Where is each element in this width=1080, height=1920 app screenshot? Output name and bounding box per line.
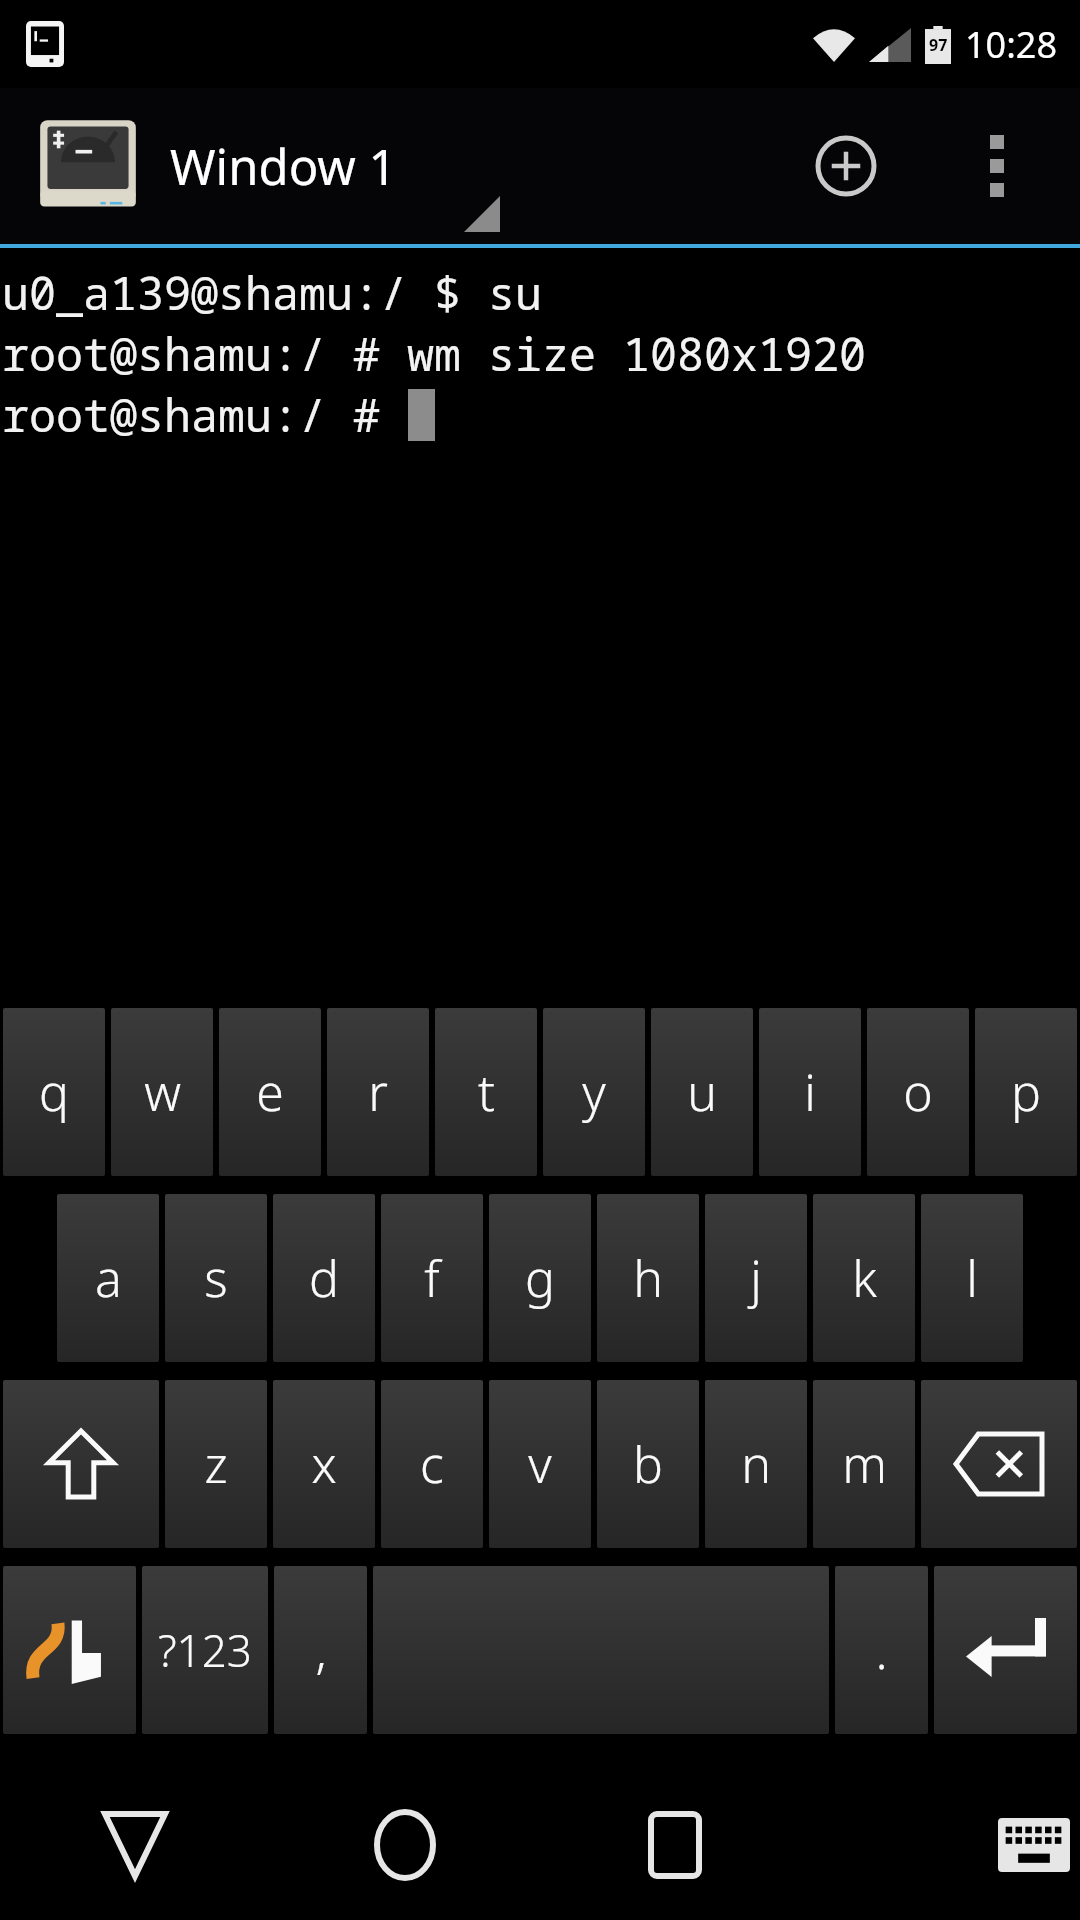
staticText: r — [368, 1058, 388, 1126]
button[interactable]: p — [975, 1008, 1077, 1176]
staticText: c — [420, 1430, 444, 1498]
staticText: t — [478, 1058, 495, 1126]
button[interactable]: l — [921, 1194, 1023, 1362]
button[interactable]: t — [435, 1008, 537, 1176]
button[interactable]: u — [651, 1008, 753, 1176]
staticText: p — [1011, 1058, 1041, 1126]
staticText: v — [528, 1430, 552, 1498]
button[interactable]: o — [867, 1008, 969, 1176]
button[interactable]: Switch keyboard — [810, 1770, 1080, 1920]
staticText: l — [966, 1244, 978, 1312]
button[interactable]: b — [597, 1380, 699, 1548]
staticText: s — [204, 1244, 228, 1312]
button[interactable]: g — [489, 1194, 591, 1362]
button[interactable]: y — [543, 1008, 645, 1176]
button[interactable]: z — [165, 1380, 267, 1548]
button[interactable]: Gesture typing — [3, 1566, 136, 1734]
button[interactable]: More options — [942, 88, 1052, 244]
staticText: d — [309, 1244, 339, 1312]
staticText: i — [804, 1058, 816, 1126]
staticText: . — [875, 1616, 888, 1684]
button[interactable]: c — [381, 1380, 483, 1548]
staticText: g — [525, 1244, 555, 1312]
staticText: m — [842, 1430, 887, 1498]
button[interactable]: d — [273, 1194, 375, 1362]
staticText: y — [582, 1058, 606, 1126]
staticText: u — [687, 1058, 717, 1126]
button[interactable]: x — [273, 1380, 375, 1548]
staticText: b — [633, 1430, 663, 1498]
staticText: x — [311, 1430, 337, 1498]
button[interactable]: New window — [780, 100, 912, 232]
staticText: e — [256, 1058, 284, 1126]
staticText: u0_a139@shamu:/ $ su — [2, 262, 543, 323]
button[interactable]: Home — [270, 1770, 540, 1920]
button[interactable]: Recent apps — [540, 1770, 810, 1920]
staticText: q — [39, 1058, 69, 1126]
button[interactable]: s — [165, 1194, 267, 1362]
staticText: 10:28 — [965, 20, 1058, 69]
button[interactable]: r — [327, 1008, 429, 1176]
staticText: w — [144, 1058, 181, 1126]
staticText: z — [204, 1430, 228, 1498]
button[interactable]: q — [3, 1008, 105, 1176]
button[interactable]: ?123 — [142, 1566, 268, 1734]
button[interactable]: k — [813, 1194, 915, 1362]
button[interactable]: Back — [0, 1770, 270, 1920]
staticText: Window 1 — [170, 133, 397, 200]
staticText: ?123 — [158, 1620, 252, 1680]
button[interactable]: Shift — [3, 1380, 159, 1548]
button[interactable]: f — [381, 1194, 483, 1362]
staticText: j — [750, 1244, 762, 1312]
button[interactable]: a — [57, 1194, 159, 1362]
button[interactable]: Space — [373, 1566, 829, 1734]
staticText: root@shamu:/ # wm size 1080x1920 — [2, 323, 867, 384]
staticText: h — [633, 1244, 663, 1312]
staticText: 97 — [929, 34, 948, 56]
staticText: , — [315, 1616, 327, 1684]
button[interactable]: u0_a139@shamu:/ $ su — [0, 248, 1080, 1004]
button[interactable]: , — [274, 1566, 367, 1734]
button[interactable]: Window 1 — [0, 88, 417, 244]
staticText: o — [903, 1058, 933, 1126]
button[interactable]: n — [705, 1380, 807, 1548]
staticText: root@shamu:/ # — [2, 384, 408, 445]
button[interactable]: e — [219, 1008, 321, 1176]
button[interactable]: v — [489, 1380, 591, 1548]
button[interactable]: w — [111, 1008, 213, 1176]
staticText: k — [852, 1244, 877, 1312]
button[interactable]: h — [597, 1194, 699, 1362]
button[interactable]: i — [759, 1008, 861, 1176]
button[interactable]: Enter — [934, 1566, 1077, 1734]
button[interactable]: m — [813, 1380, 915, 1548]
staticText: f — [424, 1244, 440, 1312]
button[interactable]: j — [705, 1194, 807, 1362]
button[interactable]: Backspace — [921, 1380, 1077, 1548]
staticText: a — [95, 1244, 122, 1312]
staticText: n — [741, 1430, 771, 1498]
button[interactable]: . — [835, 1566, 928, 1734]
